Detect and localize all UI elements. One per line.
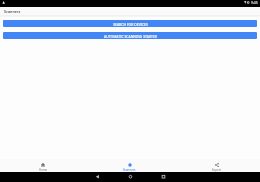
staticText: 9:45 — [251, 0, 258, 5]
button[interactable]: Recent apps — [158, 172, 169, 182]
staticText: SEARCH FOR DEVICES — [113, 22, 148, 27]
button[interactable]: Home — [125, 172, 136, 182]
staticText: Scanners — [4, 9, 21, 14]
staticText: Home — [39, 168, 48, 172]
button[interactable]: AUTOMATIC SCANNING STARTER — [3, 32, 257, 39]
button[interactable]: SEARCH FOR DEVICES — [3, 20, 257, 27]
staticText: AUTOMATIC SCANNING STARTER — [104, 34, 157, 39]
staticText: Export — [212, 168, 221, 172]
button[interactable]: Home — [0, 160, 86, 172]
button[interactable]: Export — [173, 160, 260, 172]
button[interactable]: Scanners — [86, 160, 173, 172]
button[interactable]: Back — [92, 172, 103, 182]
staticText: Scanners — [123, 168, 136, 172]
